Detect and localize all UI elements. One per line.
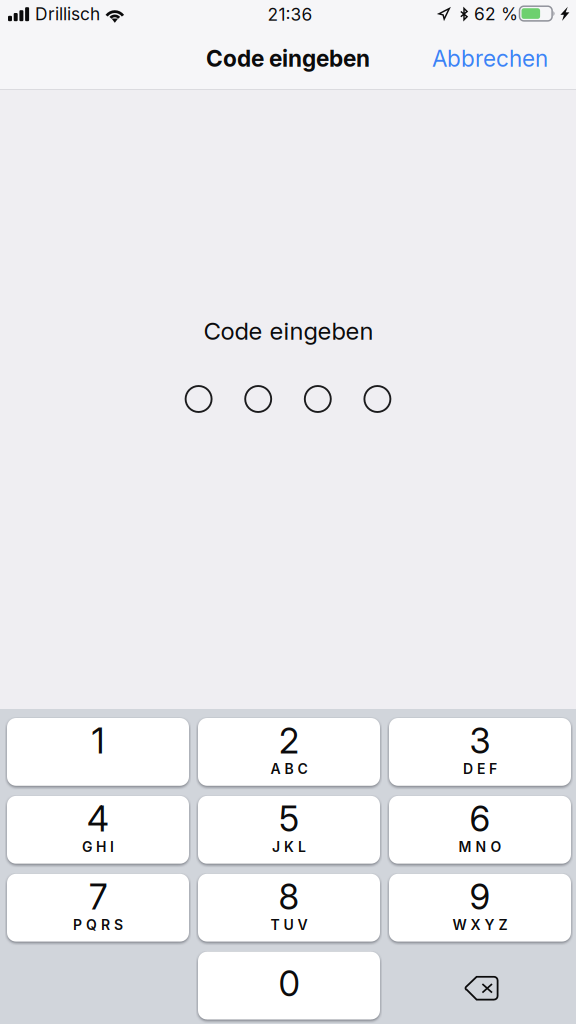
staticText: J K L — [272, 838, 306, 855]
button[interactable]: Abbrechen — [412, 36, 548, 80]
staticText: T U V — [270, 916, 307, 933]
staticText: 4 — [87, 798, 109, 840]
staticText: W X Y Z — [452, 916, 507, 933]
button[interactable]: 4 — [7, 796, 189, 864]
staticText: P Q R S — [73, 916, 123, 933]
button[interactable]: Löschen — [389, 952, 571, 1019]
staticText: 2 — [279, 720, 299, 762]
staticText: 62 % — [474, 3, 518, 24]
staticText: Drillisch — [35, 3, 100, 24]
staticText: 7 — [89, 876, 107, 918]
staticText: Code eingeben — [206, 45, 370, 72]
button[interactable]: 3 — [389, 718, 571, 786]
staticText: 21:36 — [267, 4, 312, 25]
staticText: Abbrechen — [432, 45, 548, 72]
staticText: 5 — [279, 798, 299, 840]
button[interactable]: 0 — [198, 952, 380, 1019]
button[interactable]: 7 — [7, 874, 189, 942]
button[interactable]: 8 — [198, 874, 380, 942]
staticText: 3 — [469, 720, 490, 762]
staticText: G H I — [82, 838, 114, 855]
staticText: M N O — [458, 838, 501, 855]
button[interactable]: 2 — [198, 718, 380, 786]
staticText: 6 — [469, 798, 490, 840]
staticText: 8 — [278, 876, 299, 918]
staticText: A B C — [270, 760, 307, 777]
staticText: 0 — [278, 963, 299, 1005]
button[interactable]: 6 — [389, 796, 571, 864]
button[interactable]: 5 — [198, 796, 380, 864]
button[interactable]: 9 — [389, 874, 571, 942]
staticText: 1 — [91, 720, 104, 762]
staticText: Code eingeben — [203, 316, 373, 345]
button[interactable]: 1 — [7, 718, 189, 786]
staticText: D E F — [463, 760, 497, 777]
staticText: 9 — [469, 876, 490, 918]
